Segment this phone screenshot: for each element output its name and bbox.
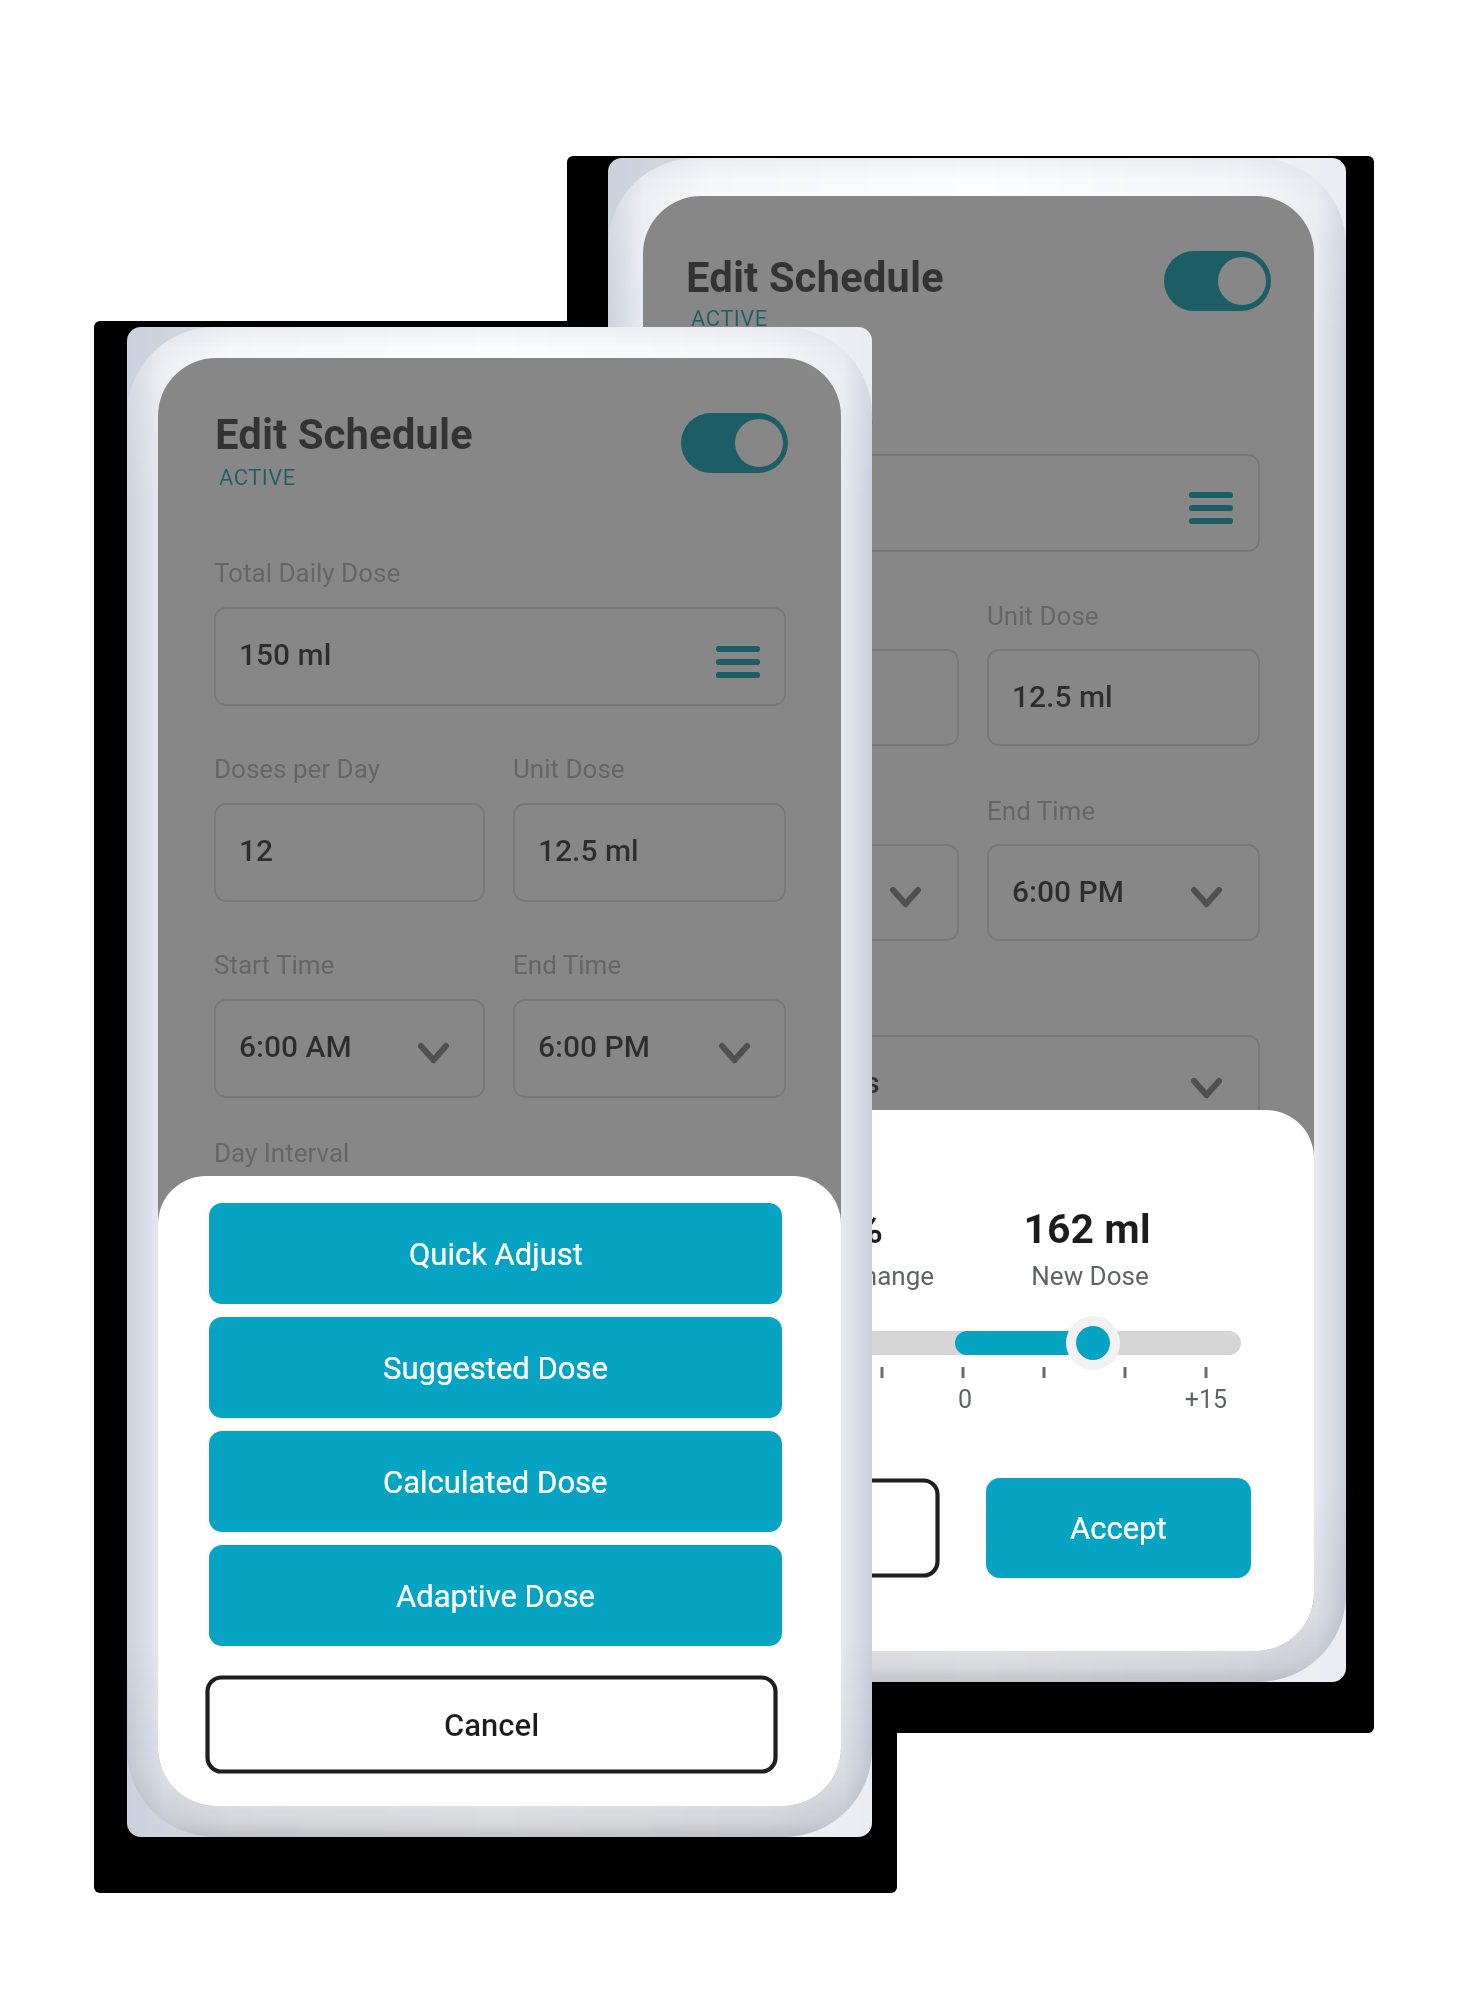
button[interactable]: 12.5 ml	[513, 803, 786, 902]
button[interactable]: Adaptive Dose	[209, 1545, 782, 1646]
staticText: ACTIVE	[219, 465, 296, 491]
button[interactable]: Expand	[1191, 1078, 1222, 1098]
staticText: Edit Schedule	[686, 253, 944, 302]
staticText: Adaptive Dose	[396, 1578, 596, 1614]
button[interactable]: 6:00 AM	[214, 999, 485, 1098]
staticText: Quick Adjust	[409, 1236, 583, 1272]
staticText: +15	[1046, 1385, 1314, 1445]
button[interactable]: 6:00 AM	[687, 844, 959, 941]
staticText: Suggested Dose	[383, 1350, 608, 1386]
staticText: 6:00 PM	[538, 1029, 651, 1064]
button[interactable]: Quick Adjust	[209, 1203, 782, 1304]
staticText: Edit Schedule	[215, 410, 473, 459]
staticText: Start Time	[687, 796, 808, 826]
staticText: Accept	[1070, 1510, 1167, 1546]
button[interactable]: Expand	[890, 887, 921, 907]
staticText: 12	[712, 679, 747, 714]
button[interactable]: Suggested Dose	[209, 1317, 782, 1418]
button[interactable]: Every 2 days	[687, 1035, 1260, 1133]
button[interactable]: Cancel	[205, 1675, 778, 1774]
button[interactable]: 12	[687, 649, 959, 746]
button[interactable]: Schedule active toggle	[1164, 251, 1271, 311]
staticText: Unit Dose	[987, 601, 1099, 631]
staticText: 162 ml	[927, 1205, 1247, 1265]
staticText: Every 2 days	[712, 1065, 880, 1100]
button[interactable]: Calculated Dose	[209, 1431, 782, 1532]
button[interactable]: 6:00 PM	[513, 999, 786, 1098]
staticText: Cancel	[760, 1510, 856, 1546]
staticText: End Time	[513, 950, 622, 980]
button[interactable]: Accept	[986, 1478, 1251, 1578]
staticText: End Time	[987, 796, 1096, 826]
staticText: ACTIVE	[691, 306, 768, 332]
staticText: Day Interval	[214, 1138, 350, 1168]
staticText: 12.5 ml	[538, 833, 639, 868]
button[interactable]: Expand	[719, 1043, 750, 1063]
staticText: Day Interval	[687, 985, 823, 1015]
staticText: New Dose	[930, 1261, 1250, 1321]
staticText: Doses per Day	[214, 754, 380, 784]
staticText: 150 ml	[239, 637, 332, 672]
staticText: +8%	[685, 1205, 1005, 1265]
staticText: Unit Dose	[513, 754, 625, 784]
button[interactable]: 12.5 ml	[987, 649, 1260, 746]
button[interactable]: 150 ml	[687, 454, 1260, 552]
staticText: Calculated Dose	[383, 1464, 608, 1500]
button[interactable]: Dose options	[1189, 492, 1233, 524]
button[interactable]: Schedule active toggle	[681, 413, 788, 473]
staticText: 6:00 PM	[1012, 874, 1125, 909]
staticText: 6:00 AM	[239, 1029, 352, 1064]
button[interactable]: Expand	[1191, 887, 1222, 907]
button[interactable]: 12	[214, 803, 485, 902]
staticText: 12.5 ml	[1012, 679, 1113, 714]
staticText: Doses per Day	[687, 601, 853, 631]
button[interactable]: Dose options	[716, 646, 760, 678]
staticText: Total Daily Dose	[687, 406, 874, 436]
staticText: 6:00 AM	[712, 874, 825, 909]
button[interactable]: Cancel	[675, 1478, 940, 1578]
button[interactable]: Expand	[418, 1043, 449, 1063]
staticText: Start Time	[214, 950, 335, 980]
staticText: 12	[239, 833, 274, 868]
button[interactable]: 150 ml	[214, 607, 786, 706]
staticText: Cancel	[444, 1707, 540, 1743]
staticText: 0	[805, 1385, 1125, 1445]
staticText: Change	[730, 1261, 1050, 1321]
button[interactable]: 6:00 PM	[987, 844, 1260, 941]
staticText: Total Daily Dose	[214, 558, 401, 588]
